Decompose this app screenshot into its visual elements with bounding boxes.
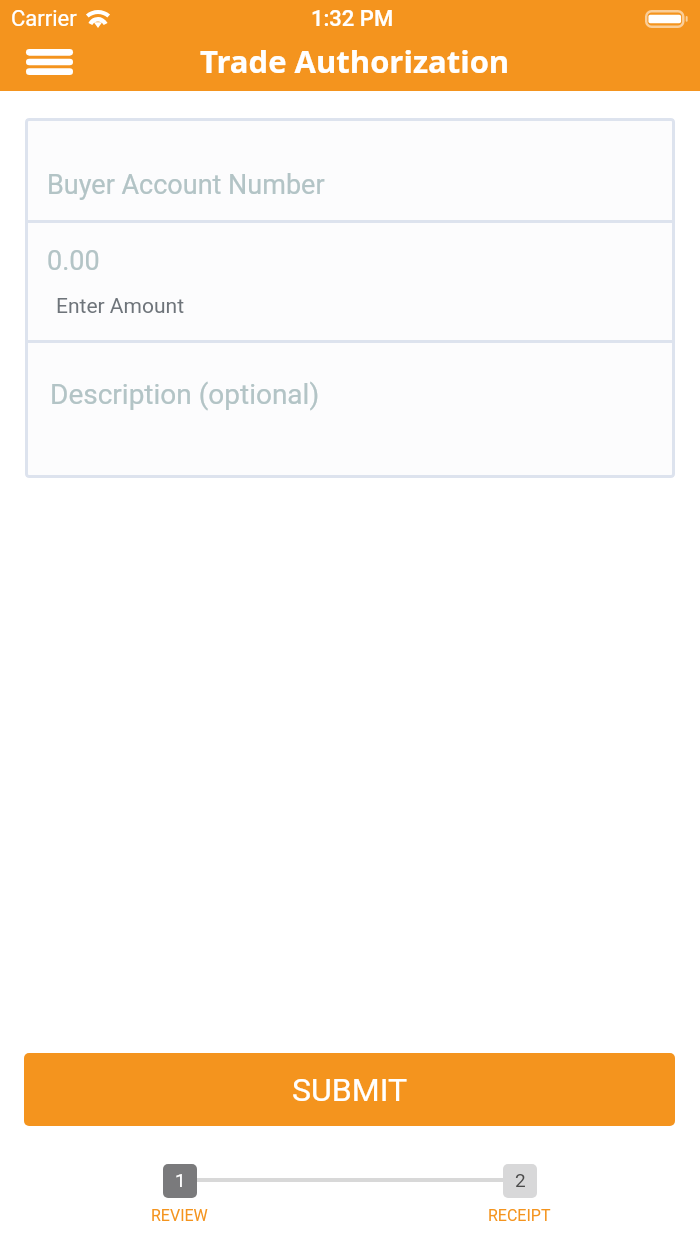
button[interactable]: SUBMIT [24, 1053, 675, 1126]
staticText: Description (optional) [50, 378, 320, 411]
button[interactable]: Description field [25, 342, 675, 478]
staticText: 1:32 PM [311, 6, 394, 32]
staticText: REVIEW [151, 1206, 208, 1225]
button[interactable]: 1 [131, 1164, 228, 1224]
staticText: Carrier [11, 6, 77, 32]
staticText: 0.00 [47, 245, 100, 277]
staticText: RECEIPT [488, 1206, 551, 1225]
other: Wi-Fi signal [86, 10, 110, 28]
other: Battery full [645, 10, 688, 28]
button[interactable]: Amount field [25, 222, 675, 340]
button[interactable]: Buyer Account Number field [25, 118, 675, 220]
staticText: SUBMIT [292, 1071, 407, 1109]
staticText: Trade Authorization [200, 40, 510, 82]
button[interactable]: 2 [471, 1164, 568, 1224]
staticText: Buyer Account Number [47, 169, 325, 201]
staticText: Enter Amount [56, 294, 184, 319]
staticText: 1 [175, 1169, 186, 1191]
staticText: 2 [515, 1169, 526, 1191]
button[interactable]: Open navigation menu [11, 37, 88, 87]
